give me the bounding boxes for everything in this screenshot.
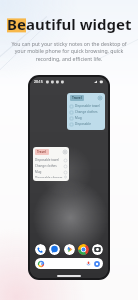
- button[interactable]: Messages: [49, 244, 60, 255]
- staticText: Travel: [37, 150, 47, 154]
- staticText: 20:15: [34, 79, 43, 84]
- staticText: Disposable towel: [75, 104, 100, 108]
- button[interactable]: Camera: [92, 244, 103, 255]
- button[interactable]: Travel: [33, 147, 69, 181]
- button[interactable]: Phone: [35, 244, 46, 255]
- staticText: You can put your sticky notes on the des…: [10, 40, 128, 63]
- staticText: Disposable slippers: [75, 122, 102, 126]
- staticText: Mug: [75, 116, 82, 120]
- staticText: Be: [7, 14, 26, 34]
- staticText: Change clothes: [35, 164, 64, 168]
- staticText: autiful widget: [26, 14, 132, 34]
- staticText: Disposable slippers: [35, 176, 64, 178]
- staticText: Change clothes: [75, 110, 98, 114]
- staticText: Disposable towel: [35, 158, 64, 162]
- button[interactable]: [35, 258, 103, 269]
- button[interactable]: Chrome: [78, 244, 89, 255]
- staticText: Travel: [72, 96, 82, 100]
- button[interactable]: Play Store: [64, 244, 75, 255]
- staticText: Mug: [35, 170, 64, 174]
- button[interactable]: Travel: [67, 93, 105, 130]
